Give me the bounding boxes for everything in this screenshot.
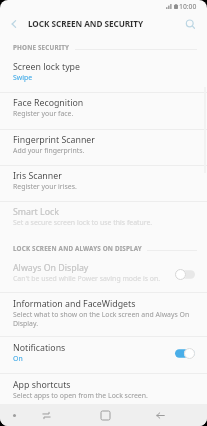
button[interactable]: Information and FaceWidgets (0, 293, 207, 336)
button[interactable]: Back (150, 405, 170, 425)
staticText: Face Recognition (13, 97, 84, 109)
button[interactable]: App shortcuts (0, 374, 207, 404)
button[interactable]: Home (95, 405, 115, 425)
staticText: Register your face. (13, 109, 74, 118)
staticText: Smart Lock (13, 206, 59, 218)
staticText: LOCK SCREEN AND SECURITY (28, 18, 143, 29)
staticText: Can't be used while Power saving mode is… (13, 274, 161, 283)
staticText: Screen lock type (13, 61, 80, 73)
staticText: LOCK SCREEN AND ALWAYS ON DISPLAY (13, 244, 142, 253)
staticText: Register your irises. (13, 182, 77, 191)
button[interactable]: Iris Scanner (0, 166, 207, 201)
staticText: Fingerprint Scanner (13, 134, 95, 146)
staticText: On (13, 354, 23, 363)
staticText: Add your fingerprints. (13, 146, 85, 155)
staticText: Swipe (13, 73, 33, 82)
staticText: Notifications (13, 342, 66, 354)
staticText: PHONE SECURITY (13, 43, 70, 52)
button[interactable]: Navigate up (3, 13, 25, 34)
button[interactable]: Notifications (0, 337, 207, 373)
button[interactable]: Fingerprint Scanner (0, 130, 207, 165)
staticText: Select apps to open from the Lock screen… (13, 391, 148, 400)
button[interactable]: Recents (36, 405, 56, 425)
button[interactable]: Smart Lock (0, 202, 207, 239)
staticText: Always On Display (13, 262, 89, 274)
button[interactable]: Search (179, 13, 201, 35)
staticText: Information and FaceWidgets (13, 298, 136, 310)
button[interactable]: Face Recognition (0, 93, 207, 129)
staticText: 10:00 (179, 2, 197, 11)
staticText: Set a secure screen lock to use this fea… (13, 218, 153, 227)
button[interactable]: Always On Display (0, 257, 207, 292)
staticText: App shortcuts (13, 379, 71, 391)
staticText: Select what to show on the Lock screen a… (13, 310, 195, 328)
button[interactable]: Screen lock type (0, 56, 207, 92)
staticText: Iris Scanner (13, 170, 62, 182)
